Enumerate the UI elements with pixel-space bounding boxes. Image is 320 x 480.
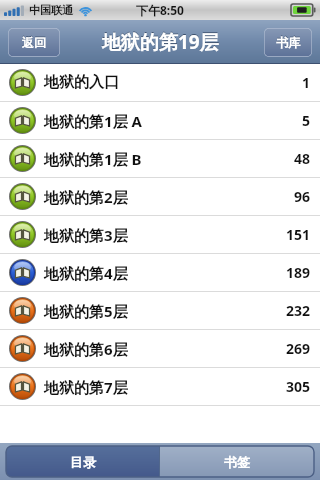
staticText: 返回	[22, 35, 46, 50]
staticText: 305	[285, 377, 310, 396]
button[interactable]: 地狱的第6层	[0, 330, 320, 368]
button[interactable]: 书库	[264, 28, 312, 57]
staticText: 地狱的第5层	[44, 301, 285, 321]
staticText: 地狱的第4层	[44, 263, 285, 283]
staticText: 书签	[224, 454, 250, 470]
staticText: 中国联通	[29, 3, 73, 17]
staticText: 地狱的第19层	[102, 29, 219, 55]
button[interactable]: 地狱的第3层	[0, 216, 320, 254]
button[interactable]: 地狱的第7层	[0, 368, 320, 406]
button[interactable]: 返回	[8, 28, 60, 57]
staticText: 48	[293, 149, 310, 168]
staticText: 地狱的第3层	[44, 225, 285, 245]
staticText: 5	[301, 111, 310, 130]
button[interactable]: 书签	[160, 446, 314, 477]
staticText: 地狱的第2层	[44, 187, 293, 207]
staticText: 地狱的第6层	[44, 339, 285, 359]
staticText: 目录	[70, 454, 96, 470]
staticText: 232	[285, 301, 310, 320]
button[interactable]: 地狱的第1层 A	[0, 102, 320, 140]
button[interactable]: 地狱的第2层	[0, 178, 320, 216]
staticText: 地狱的入口	[44, 73, 301, 92]
button[interactable]: 地狱的第4层	[0, 254, 320, 292]
button[interactable]: 目录	[6, 446, 159, 477]
staticText: 书库	[276, 35, 300, 50]
staticText: 96	[293, 187, 310, 206]
button[interactable]: 地狱的第5层	[0, 292, 320, 330]
staticText: 1	[301, 73, 310, 92]
staticText: 地狱的第7层	[44, 377, 285, 397]
staticText: 地狱的第1层 A	[44, 111, 301, 131]
button[interactable]: 地狱的第1层 B	[0, 140, 320, 178]
staticText: 地狱的第1层 B	[44, 149, 293, 169]
staticText: 189	[285, 263, 310, 282]
staticText: 下午8:50	[136, 2, 184, 18]
staticText: 151	[285, 225, 310, 244]
staticText: 269	[285, 339, 310, 358]
button[interactable]: 地狱的入口	[0, 64, 320, 102]
